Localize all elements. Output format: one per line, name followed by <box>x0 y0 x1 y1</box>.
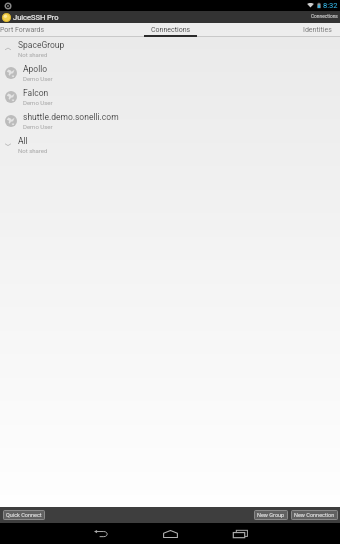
staticText: All <box>18 136 28 146</box>
button[interactable]: Recent apps <box>226 523 254 544</box>
button[interactable]: New Group <box>254 510 288 520</box>
button[interactable]: New Connection <box>291 510 338 520</box>
staticText: Quick Connect <box>6 512 42 518</box>
staticText: New Group <box>257 512 285 518</box>
staticText: Demo User <box>23 123 53 130</box>
button[interactable]: shuttle.demo.sonelli.com <box>0 109 340 133</box>
other: Notification <box>4 2 12 10</box>
staticText: JuiceSSH Pro <box>13 13 59 22</box>
staticText: Falcon <box>23 88 49 98</box>
staticText: Identities <box>303 26 332 34</box>
staticText: New Connection <box>294 512 335 518</box>
staticText: Connections <box>311 14 338 20</box>
button[interactable]: Connections <box>118 23 223 37</box>
staticText: Connections <box>151 26 191 34</box>
staticText: SpaceGroup <box>18 40 65 50</box>
staticText: 8:32 <box>323 1 338 10</box>
other: Battery <box>317 2 321 9</box>
button[interactable]: Quick Connect <box>3 510 45 520</box>
staticText: Not shared <box>18 51 48 58</box>
button[interactable]: Falcon <box>0 85 340 109</box>
staticText: Not shared <box>18 147 48 154</box>
button[interactable]: Apollo <box>0 61 340 85</box>
button[interactable]: Home <box>156 523 184 544</box>
staticText: Demo User <box>23 99 53 106</box>
staticText: Apollo <box>23 64 48 74</box>
staticText: shuttle.demo.sonelli.com <box>23 112 119 122</box>
button[interactable]: Back <box>87 523 115 544</box>
button[interactable]: Port Forwards <box>0 23 75 37</box>
button[interactable]: SpaceGroup <box>0 37 340 61</box>
staticText: Port Forwards <box>0 26 45 34</box>
staticText: Demo User <box>23 75 53 82</box>
other: Wi-Fi <box>307 2 314 9</box>
button[interactable]: Identities <box>265 23 340 37</box>
button[interactable]: All <box>0 133 340 157</box>
